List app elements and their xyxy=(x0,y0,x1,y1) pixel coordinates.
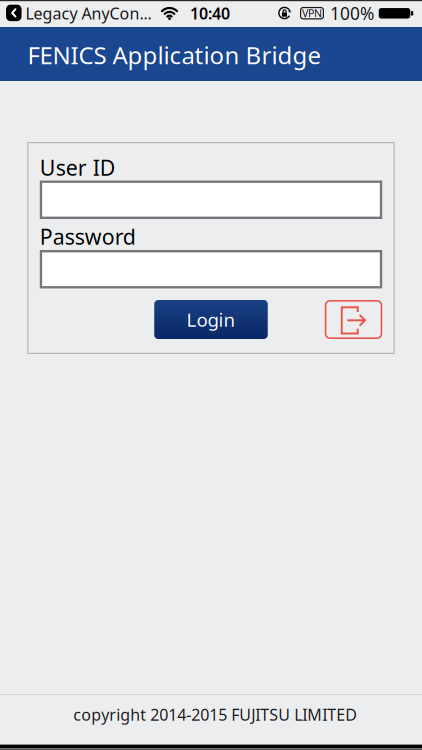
button[interactable]: Login xyxy=(154,300,268,339)
staticText: User ID xyxy=(40,153,116,182)
staticText: Password xyxy=(40,222,136,251)
staticText: Login xyxy=(186,307,235,332)
staticText: 10:40 xyxy=(190,3,230,24)
staticText: VPN xyxy=(302,6,322,20)
staticText: 100% xyxy=(330,2,374,25)
button[interactable]: Back to Legacy AnyConnect xyxy=(6,5,22,21)
staticText: Legacy AnyCon... xyxy=(25,3,151,24)
button[interactable]: Logout xyxy=(325,300,382,339)
staticText: copyright 2014-2015 FUJITSU LIMITED xyxy=(73,704,357,725)
staticText: FENICS Application Bridge xyxy=(27,39,321,71)
